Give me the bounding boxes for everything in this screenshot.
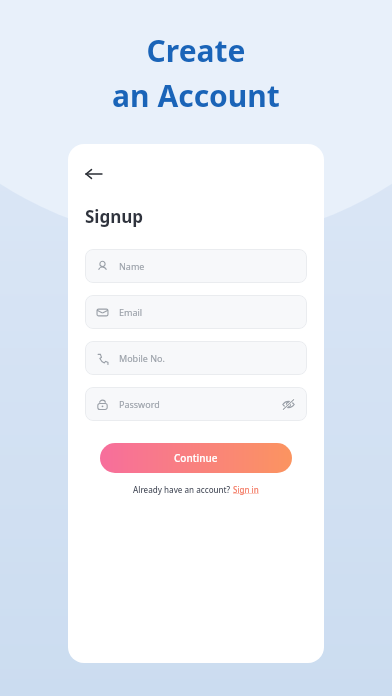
button[interactable]: Back [81, 161, 107, 187]
staticText: Signup [85, 205, 144, 228]
staticText: Create [0, 30, 392, 71]
button[interactable]: Password [85, 387, 307, 421]
staticText: Sign in [233, 484, 259, 495]
staticText: an Account [0, 75, 392, 116]
staticText: Mobile No. [119, 352, 165, 364]
staticText: Continue [174, 451, 218, 465]
staticText: Email [119, 306, 143, 318]
staticText: Name [119, 260, 145, 272]
button[interactable]: Mobile No. [85, 341, 307, 375]
button[interactable]: Name [85, 249, 307, 283]
staticText: Password [119, 398, 160, 410]
button[interactable]: Show password [280, 396, 296, 412]
staticText: Already have an account? [133, 484, 233, 495]
button[interactable]: Sign in [233, 484, 259, 495]
button[interactable]: Email [85, 295, 307, 329]
button[interactable]: Continue [100, 443, 292, 473]
